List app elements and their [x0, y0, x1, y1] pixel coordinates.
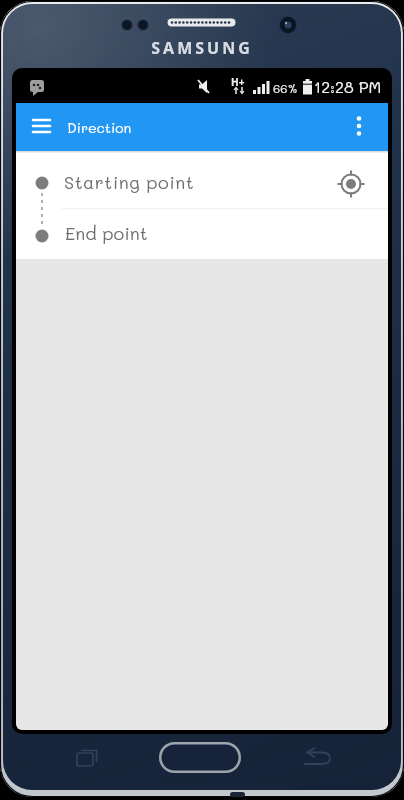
staticText: End point [65, 221, 148, 244]
staticText: 66% [273, 80, 298, 96]
button[interactable] [159, 742, 241, 773]
staticText: Direction [67, 118, 132, 136]
button[interactable] [26, 111, 58, 143]
button[interactable] [326, 155, 380, 208]
staticText: SAMSUNG [0, 37, 404, 59]
staticText: Starting point [64, 170, 195, 193]
button[interactable] [298, 742, 334, 772]
button[interactable] [344, 111, 374, 141]
staticText: H+ [231, 75, 245, 89]
staticText: 12:28 PM [314, 76, 382, 97]
button[interactable]: End point [16, 209, 388, 259]
button[interactable] [70, 742, 104, 772]
button[interactable]: Starting point [16, 151, 326, 208]
